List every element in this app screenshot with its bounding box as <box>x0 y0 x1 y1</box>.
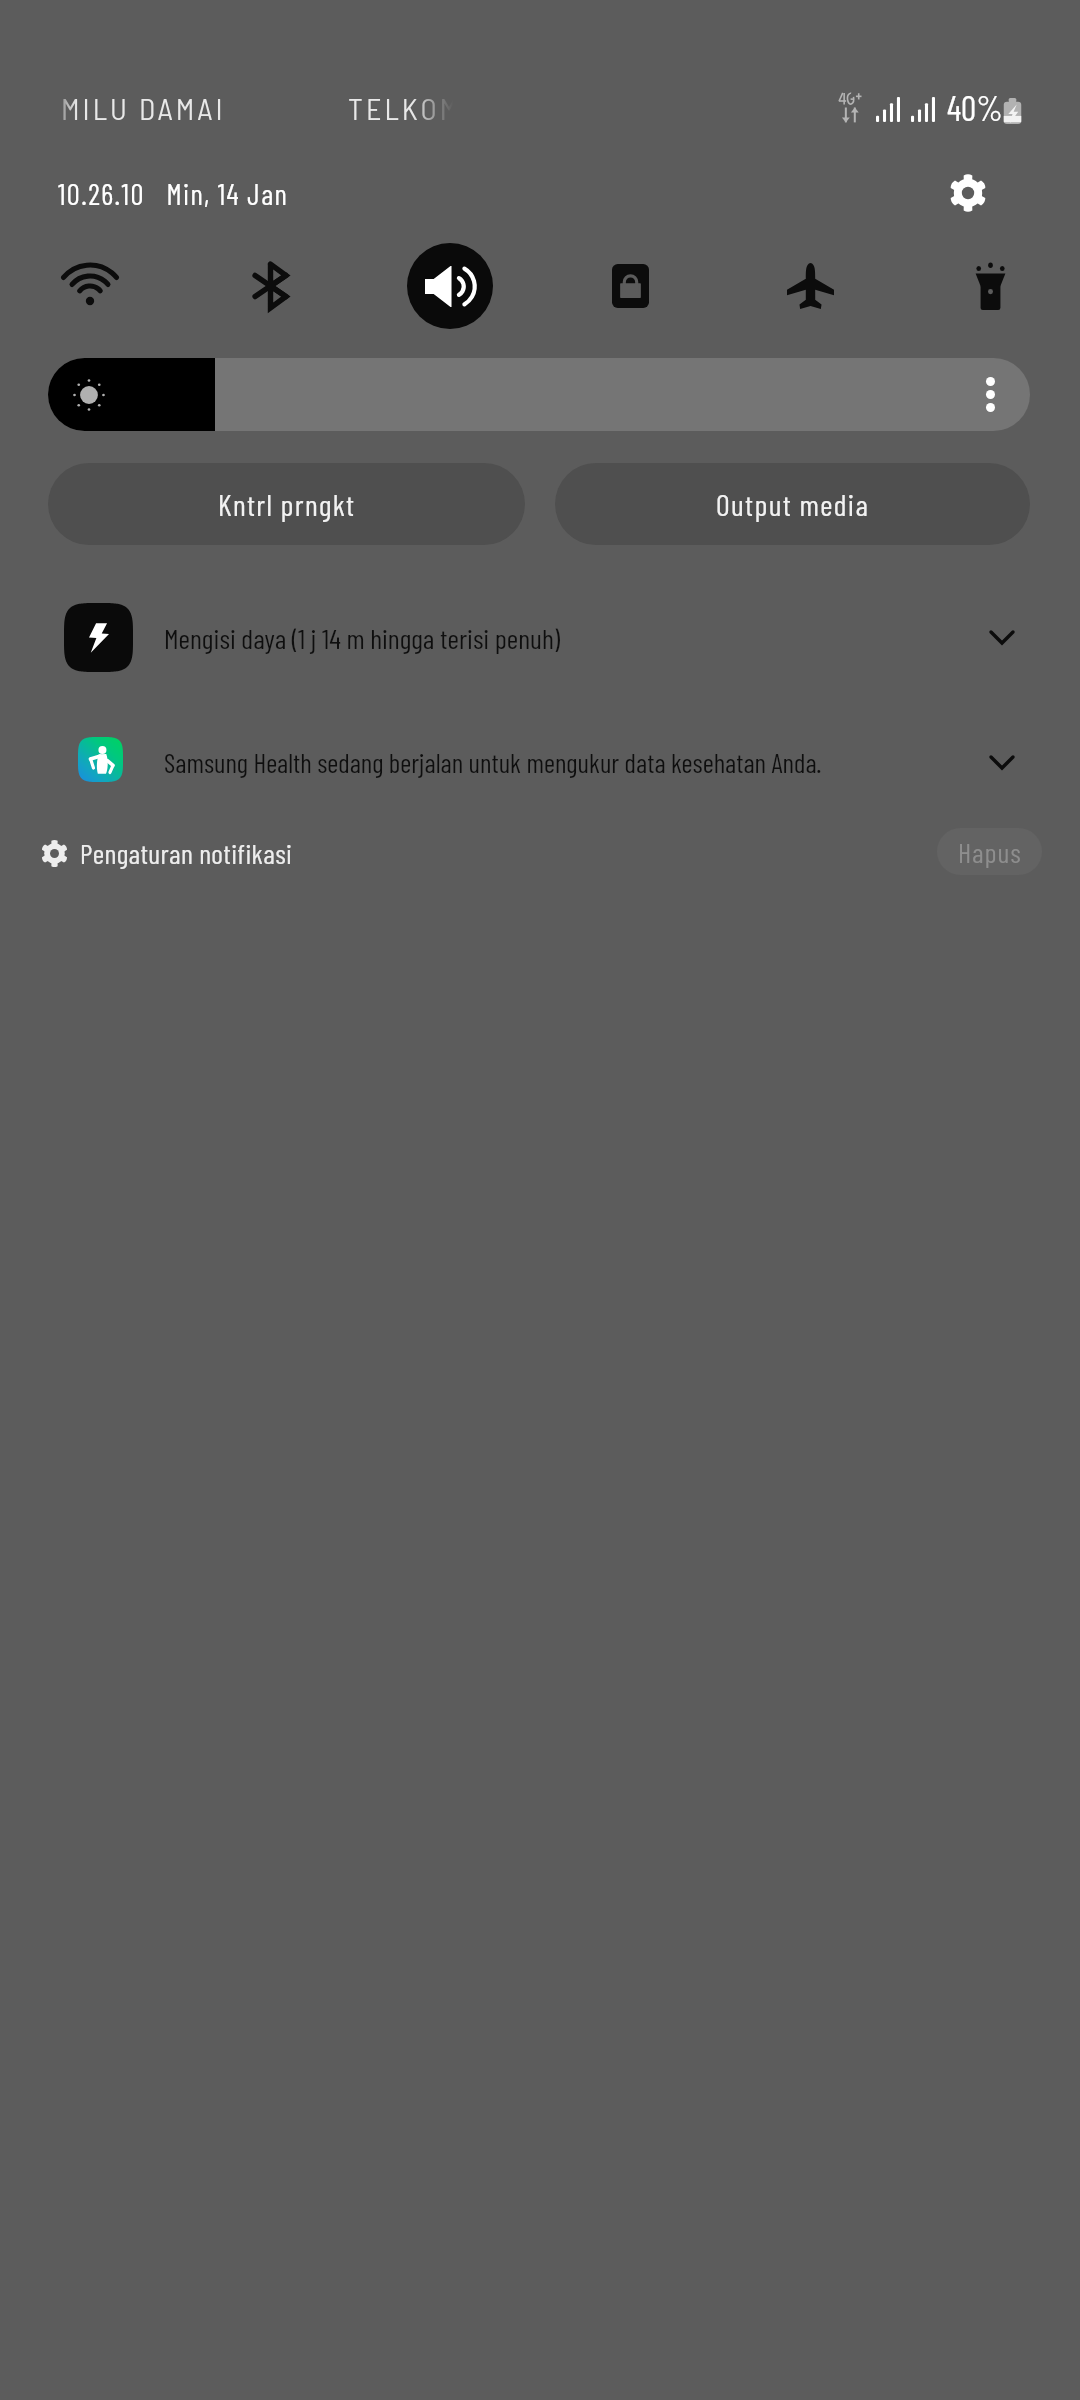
staticText: Output media <box>716 486 870 522</box>
button[interactable]: Hapus <box>937 828 1042 875</box>
staticText: Kntrl prngkt <box>218 486 356 522</box>
button[interactable]: Flashlight off <box>900 233 1080 339</box>
staticText: Hapus <box>958 835 1022 869</box>
button[interactable]: Mengisi daya (1 j 14 m hingga terisi pen… <box>0 578 1080 698</box>
staticText: Pengaturan notifikasi <box>80 836 293 870</box>
button[interactable]: Quick settings <box>932 157 1004 229</box>
button[interactable]: Wi-Fi off <box>0 233 180 339</box>
button[interactable]: Output media <box>555 463 1030 545</box>
button[interactable]: Brightness <box>48 358 1030 431</box>
button[interactable]: Pengaturan notifikasi <box>40 826 293 880</box>
staticText: 10.26.10 Min, 14 Jan <box>58 176 289 211</box>
staticText: MILU DAMAI <box>61 90 226 126</box>
button[interactable]: Bluetooth off <box>180 233 360 339</box>
staticText: TELKOM <box>348 90 462 126</box>
button[interactable]: Kntrl prngkt <box>48 463 525 545</box>
staticText: Samsung Health sedang berjalan untuk men… <box>164 746 822 778</box>
button[interactable]: Auto rotate locked <box>540 233 720 339</box>
button[interactable]: Airplane mode off <box>720 233 900 339</box>
button[interactable]: Sound on <box>360 233 540 339</box>
button[interactable]: Samsung Health sedang berjalan untuk men… <box>0 703 1080 823</box>
staticText: Mengisi daya (1 j 14 m hingga terisi pen… <box>164 621 561 655</box>
staticText: 40% <box>947 87 1003 128</box>
